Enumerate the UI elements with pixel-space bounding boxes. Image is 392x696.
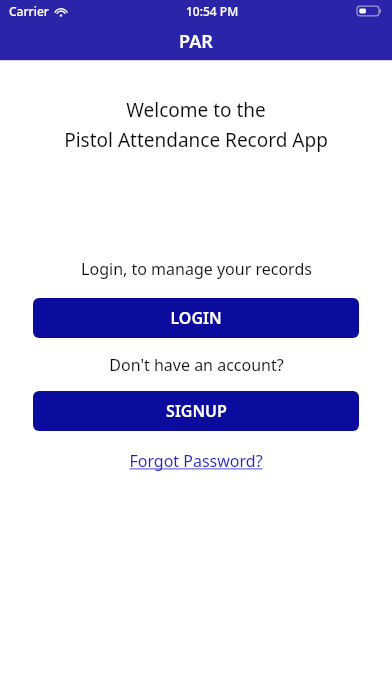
staticText: 10:54 PM xyxy=(186,3,239,19)
button[interactable]: LOGIN xyxy=(33,298,359,338)
staticText: SIGNUP xyxy=(166,400,227,422)
staticText: Welcome to the xyxy=(126,97,266,123)
button[interactable]: Forgot Password? xyxy=(125,448,267,474)
staticText: Login, to manage your records xyxy=(81,258,312,280)
staticText: Don't have an account? xyxy=(109,354,284,376)
staticText: Carrier xyxy=(9,3,49,19)
staticText: LOGIN xyxy=(170,307,222,329)
button[interactable]: SIGNUP xyxy=(33,391,359,431)
staticText: Pistol Attendance Record App xyxy=(64,127,328,153)
staticText: Forgot Password? xyxy=(129,450,263,472)
staticText: PAR xyxy=(179,29,213,54)
